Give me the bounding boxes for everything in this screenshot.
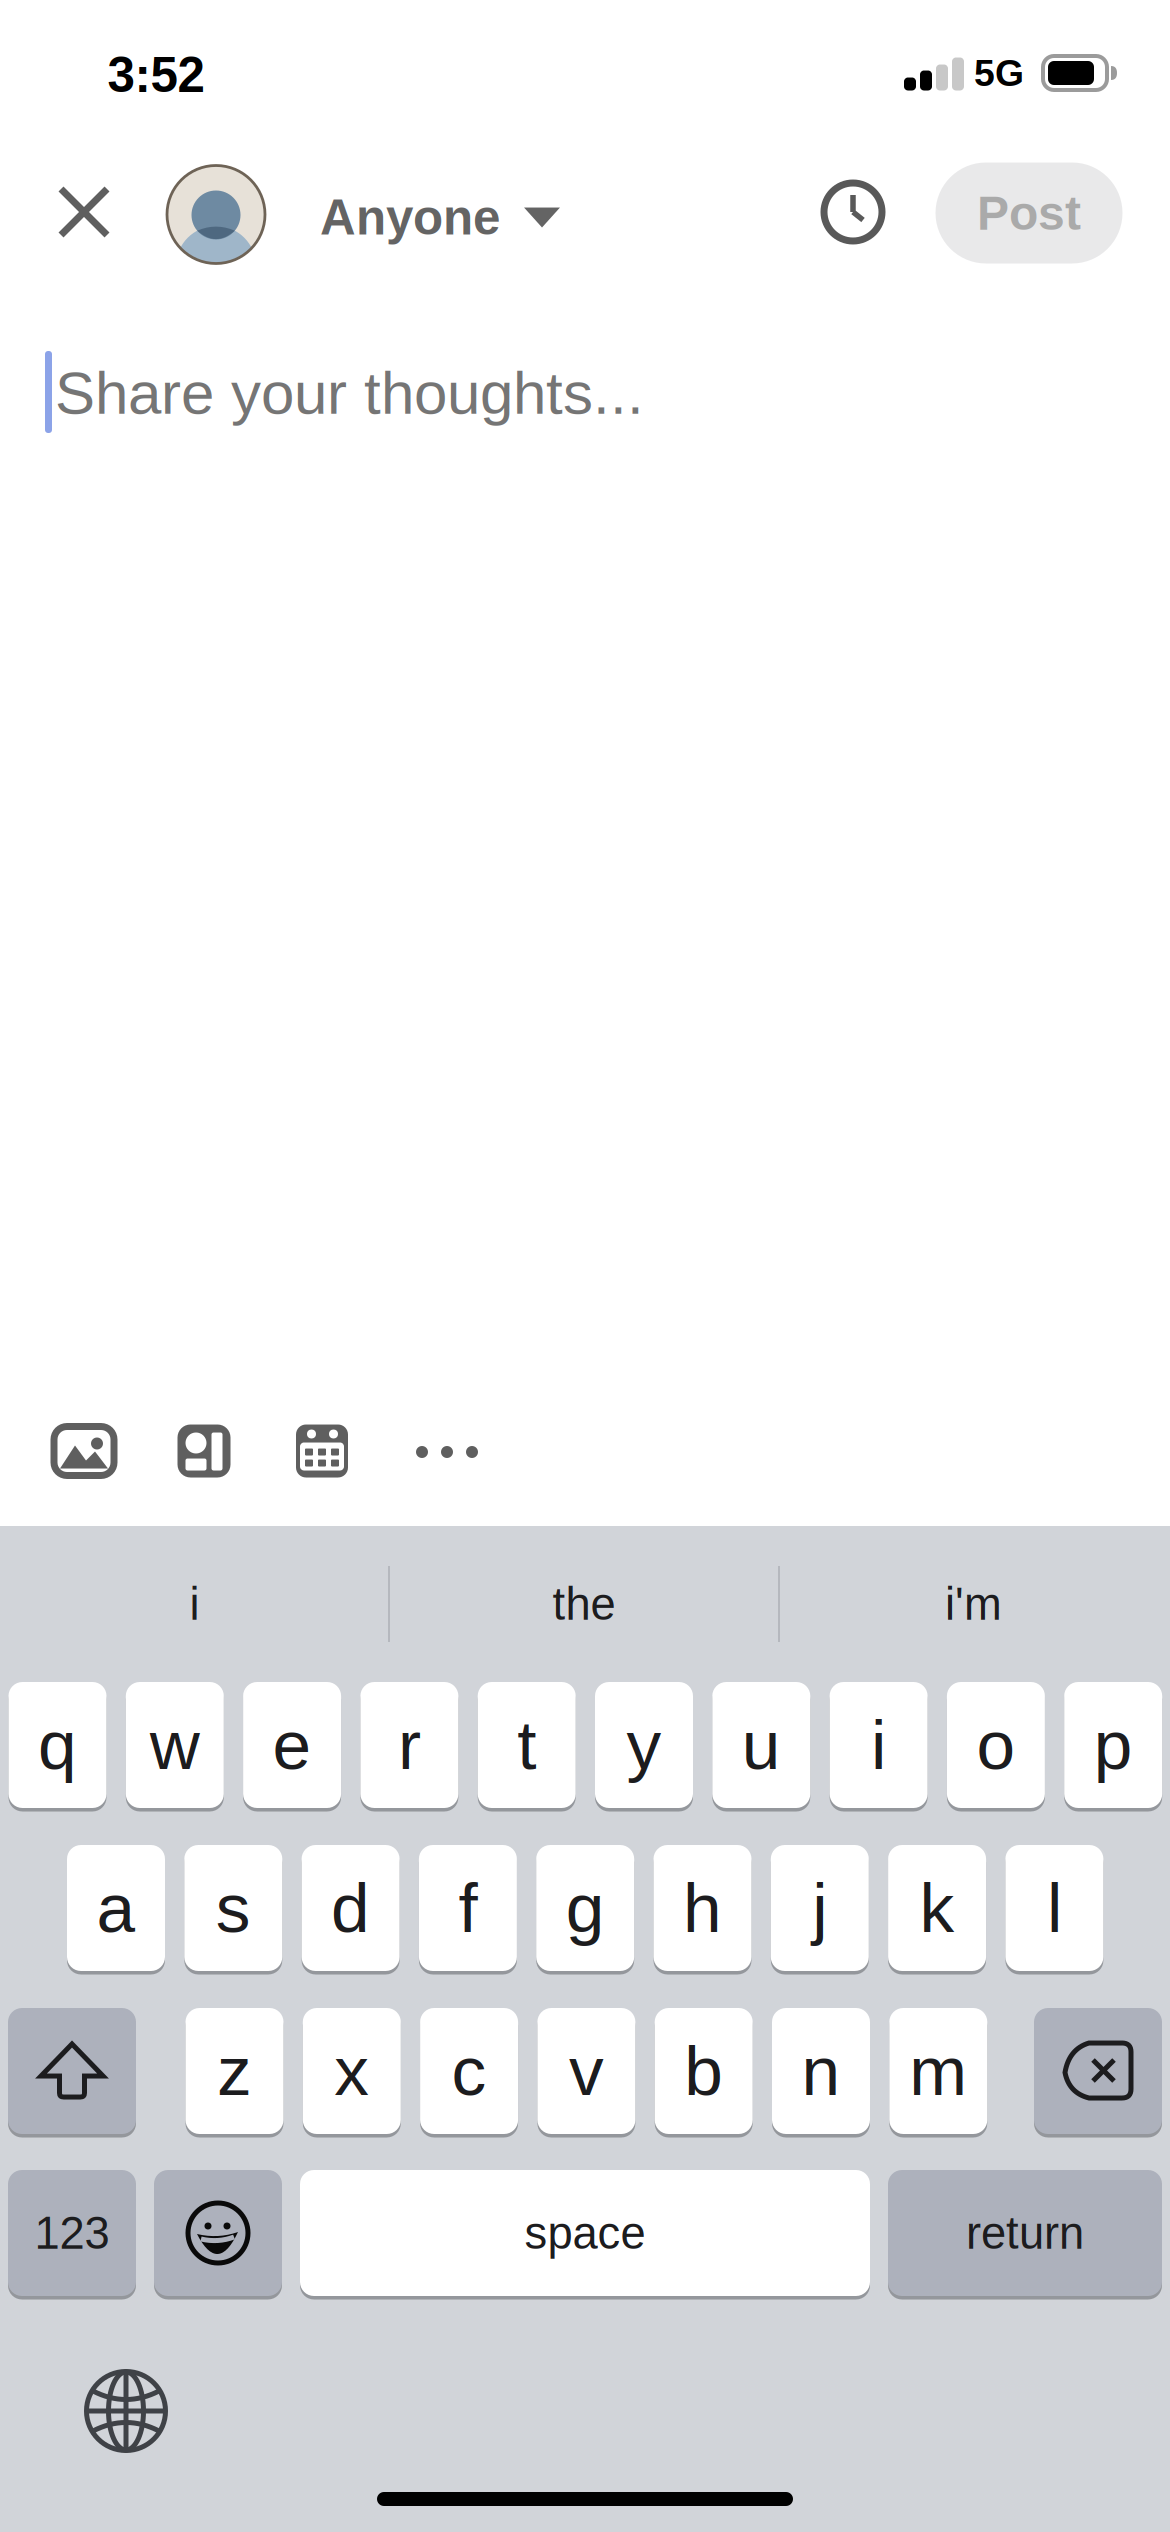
staticText: b [684, 2033, 723, 2109]
staticText: z [217, 2033, 252, 2109]
button[interactable]: Close [38, 166, 130, 258]
staticText: n [801, 2033, 840, 2109]
staticText: c [452, 2033, 487, 2109]
button[interactable]: h [653, 1845, 751, 1975]
button[interactable]: q [8, 1682, 106, 1812]
button[interactable]: Schedule post [807, 166, 899, 258]
staticText: Anyone [320, 191, 500, 244]
staticText: r [398, 1707, 421, 1783]
staticText: y [626, 1707, 661, 1783]
staticText: space [524, 2208, 645, 2258]
button[interactable]: l [1005, 1845, 1103, 1975]
button[interactable]: m [889, 2008, 987, 2138]
staticText: s [216, 1870, 251, 1946]
staticText: i [189, 1579, 199, 1629]
staticText: u [742, 1707, 781, 1783]
button[interactable]: return [888, 2170, 1162, 2300]
staticText: d [331, 1870, 370, 1946]
button[interactable]: Next keyboard [76, 2361, 176, 2461]
staticText: the [552, 1579, 615, 1629]
button[interactable]: w [126, 1682, 224, 1812]
staticText: i'm [945, 1579, 1002, 1629]
button[interactable]: f [419, 1845, 517, 1975]
button[interactable]: b [655, 2008, 753, 2138]
button[interactable]: Add a photo [39, 1411, 129, 1491]
button[interactable]: u [712, 1682, 810, 1812]
staticText: 5G [974, 53, 1024, 93]
button[interactable]: Post [935, 162, 1122, 263]
staticText: i [871, 1707, 886, 1783]
button[interactable]: y [595, 1682, 693, 1812]
button[interactable]: c [420, 2008, 518, 2138]
button[interactable]: a [67, 1845, 165, 1975]
staticText: v [569, 2033, 604, 2109]
staticText: a [96, 1870, 135, 1946]
button[interactable]: v [537, 2008, 635, 2138]
staticText: g [566, 1870, 605, 1946]
staticText: 123 [34, 2208, 109, 2258]
button[interactable]: i'm [779, 1526, 1168, 1682]
staticText: f [458, 1870, 477, 1946]
button[interactable]: p [1064, 1682, 1162, 1812]
button[interactable]: n [772, 2008, 870, 2138]
button[interactable]: x [303, 2008, 401, 2138]
button[interactable]: Emoji [154, 2170, 282, 2300]
button[interactable]: d [302, 1845, 400, 1975]
button[interactable]: Shift [8, 2008, 136, 2138]
button[interactable]: e [243, 1682, 341, 1812]
staticText: m [909, 2033, 967, 2109]
button[interactable]: i [0, 1526, 389, 1682]
staticText: x [334, 2033, 369, 2109]
staticText: o [976, 1707, 1015, 1783]
button[interactable]: space [300, 2170, 870, 2300]
button[interactable]: j [771, 1845, 869, 1975]
button[interactable]: o [947, 1682, 1045, 1812]
staticText: j [812, 1870, 827, 1946]
staticText: return [966, 2208, 1084, 2258]
staticText: t [517, 1707, 536, 1783]
staticText: Post [977, 187, 1081, 239]
button[interactable]: Create an event [282, 1411, 362, 1491]
button[interactable]: Numbers [8, 2170, 136, 2300]
button[interactable]: s [184, 1845, 282, 1975]
button[interactable]: Delete [1034, 2008, 1162, 2138]
button[interactable]: the [389, 1526, 779, 1682]
button[interactable]: g [536, 1845, 634, 1975]
button[interactable]: Share your thoughts [0, 330, 1170, 1396]
button[interactable]: t [478, 1682, 576, 1812]
staticText: q [38, 1707, 77, 1783]
staticText: k [920, 1870, 955, 1946]
button[interactable]: More options [401, 1412, 493, 1492]
staticText: l [1047, 1870, 1062, 1946]
button[interactable]: z [185, 2008, 283, 2138]
button[interactable]: r [360, 1682, 458, 1812]
staticText: e [273, 1707, 312, 1783]
button[interactable]: k [888, 1845, 986, 1975]
staticText: Share your thoughts... [55, 360, 644, 426]
staticText: p [1094, 1707, 1133, 1783]
staticText: w [150, 1707, 200, 1783]
button[interactable]: i [830, 1682, 928, 1812]
staticText: 3:52 [107, 48, 204, 102]
button[interactable]: Anyone [167, 165, 567, 263]
button[interactable]: Add media [164, 1411, 244, 1491]
staticText: h [683, 1870, 722, 1946]
